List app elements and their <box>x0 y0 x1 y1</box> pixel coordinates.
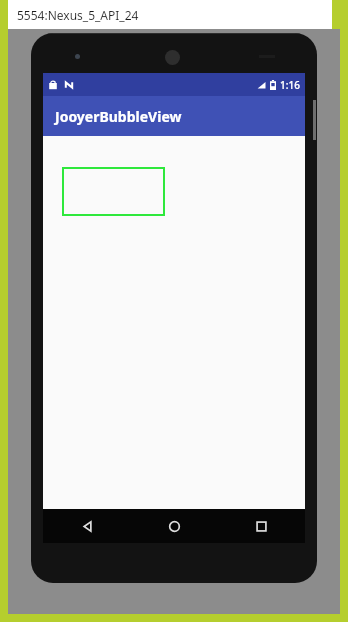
button[interactable] <box>62 167 165 216</box>
staticText: JooyerBubbleView <box>55 107 182 126</box>
button[interactable]: Back <box>43 509 131 543</box>
button[interactable]: JooyerBubbleView <box>43 96 305 136</box>
button[interactable]: Recents <box>218 509 305 543</box>
staticText: 1:16 <box>280 78 300 92</box>
staticText: 5554:Nexus_5_API_24 <box>17 7 139 23</box>
button[interactable]: Home <box>131 509 218 543</box>
